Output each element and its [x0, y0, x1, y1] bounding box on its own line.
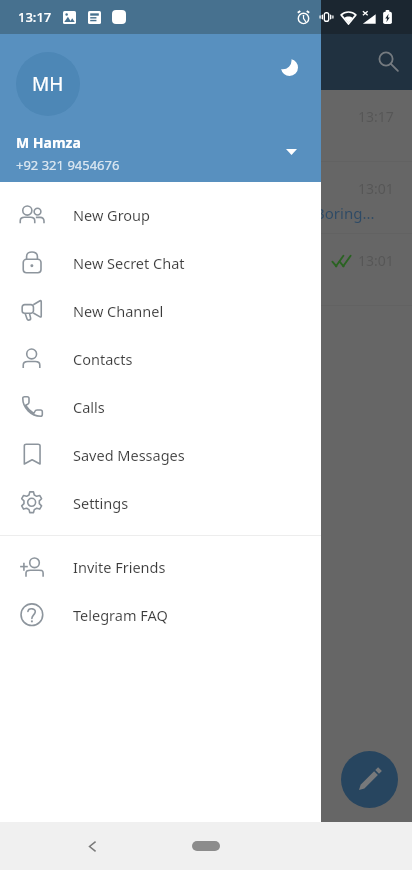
- staticText: 13:17: [18, 8, 52, 26]
- button[interactable]: Settings: [0, 479, 321, 527]
- button[interactable]: Contacts: [0, 335, 321, 383]
- button[interactable]: New Group: [0, 191, 321, 239]
- staticText: Saved Messages: [73, 445, 185, 465]
- button[interactable]: Night mode: [276, 54, 302, 80]
- staticText: Invite Friends: [73, 557, 166, 577]
- staticText: Settings: [73, 493, 129, 513]
- button[interactable]: Search: [366, 39, 410, 83]
- staticText: Boring...: [315, 203, 375, 223]
- button[interactable]: New Channel: [0, 287, 321, 335]
- staticText: Contacts: [73, 349, 133, 369]
- staticText: Telegram FAQ: [73, 605, 168, 625]
- button[interactable]: Expand accounts: [279, 140, 303, 164]
- staticText: New Channel: [73, 301, 164, 321]
- button[interactable]: 13:01: [0, 162, 412, 234]
- staticText: MH: [32, 71, 64, 97]
- button[interactable]: MH: [0, 0, 321, 182]
- staticText: 13:17: [358, 107, 394, 126]
- button[interactable]: Invite Friends: [0, 543, 321, 591]
- staticText: +92 321 9454676: [16, 156, 120, 174]
- staticText: 13:01: [358, 179, 394, 198]
- button[interactable]: 13:17: [0, 90, 412, 162]
- button[interactable]: Telegram FAQ: [0, 591, 321, 639]
- button[interactable]: Home: [192, 841, 220, 851]
- button[interactable]: Back: [73, 827, 111, 865]
- staticText: New Group: [73, 205, 150, 225]
- staticText: M Hamza: [16, 133, 81, 152]
- button[interactable]: 13:01: [0, 234, 412, 306]
- staticText: 13:01: [358, 251, 394, 270]
- staticText: Calls: [73, 397, 105, 417]
- staticText: New Secret Chat: [73, 253, 185, 273]
- button[interactable]: Calls: [0, 383, 321, 431]
- button[interactable]: Saved Messages: [0, 431, 321, 479]
- button[interactable]: New message: [341, 751, 398, 808]
- button[interactable]: New Secret Chat: [0, 239, 321, 287]
